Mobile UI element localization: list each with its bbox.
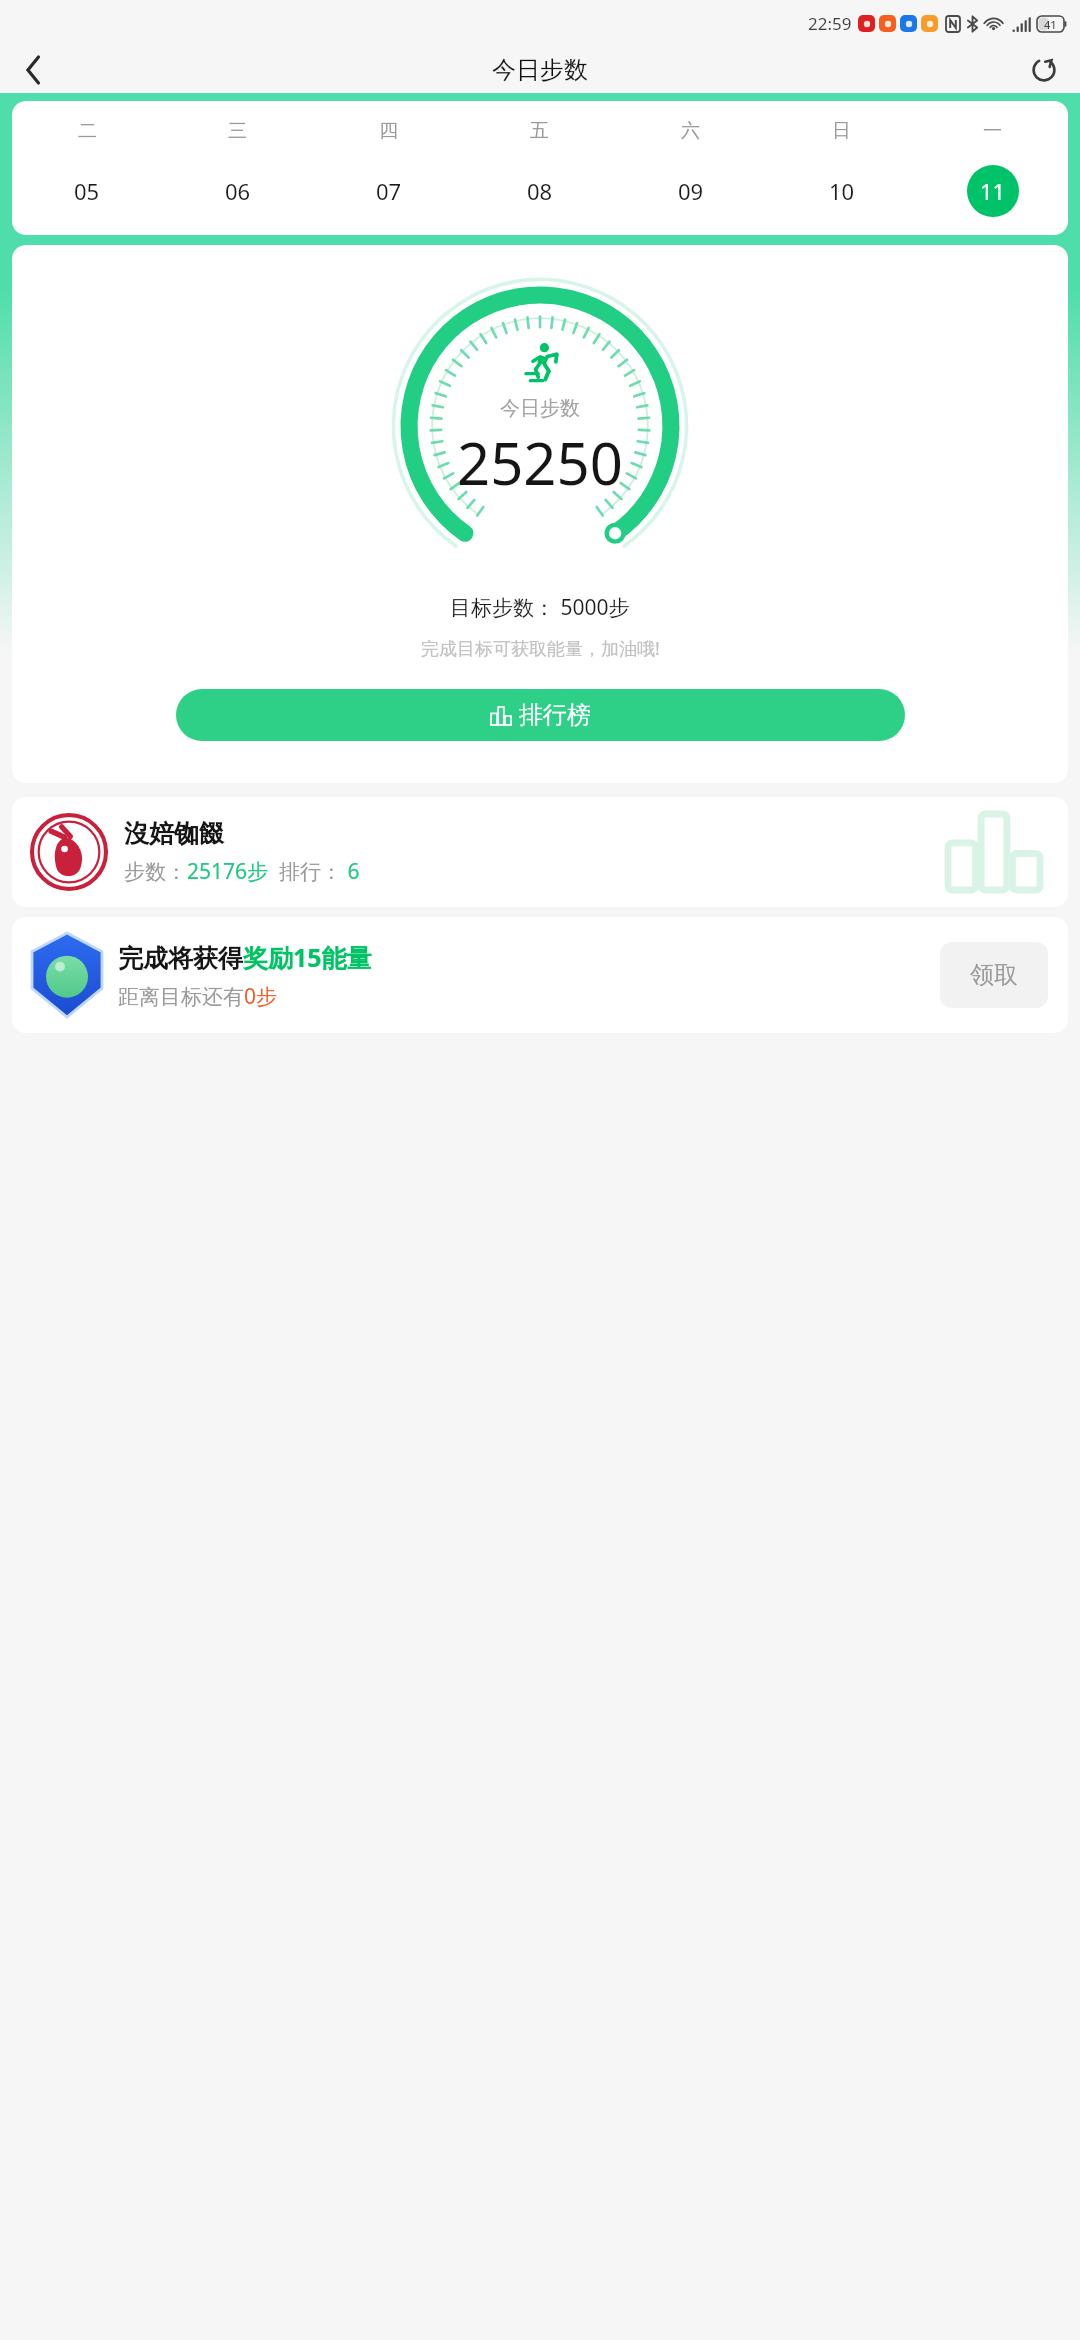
- staticText: 步数：25176步 排行： 6: [124, 857, 360, 886]
- button[interactable]: 领取: [940, 942, 1048, 1008]
- staticText: 距离目标还有0步: [118, 982, 278, 1011]
- button[interactable]: 06: [212, 165, 264, 217]
- staticText: 日: [832, 119, 851, 143]
- button[interactable]: Refresh: [1024, 50, 1064, 90]
- staticText: 08: [527, 176, 553, 206]
- button[interactable]: 08: [514, 165, 566, 217]
- staticText: 三: [228, 119, 247, 143]
- button[interactable]: 11: [967, 165, 1019, 217]
- staticText: 今日步数: [500, 396, 580, 421]
- staticText: 05: [74, 176, 100, 206]
- button[interactable]: 10: [816, 165, 868, 217]
- staticText: 完成目标可获取能量，加油哦!: [421, 636, 660, 661]
- button[interactable]: 09: [665, 165, 717, 217]
- staticText: 六: [681, 119, 700, 143]
- button[interactable]: Back: [14, 50, 54, 90]
- button[interactable]: 排行榜: [176, 689, 905, 741]
- button[interactable]: 沒婄铷餟: [12, 797, 1068, 907]
- staticText: 五: [530, 119, 549, 143]
- staticText: 25250: [457, 423, 623, 502]
- button[interactable]: 07: [363, 165, 415, 217]
- staticText: 06: [225, 176, 251, 206]
- staticText: 沒婄铷餟: [124, 818, 224, 849]
- button[interactable]: 05: [61, 165, 113, 217]
- staticText: 领取: [970, 960, 1018, 990]
- staticText: 完成将获得奖励15能量: [118, 940, 372, 974]
- staticText: 四: [379, 119, 398, 143]
- staticText: 09: [678, 176, 704, 206]
- staticText: 11: [980, 176, 1006, 206]
- staticText: 22:59: [808, 12, 852, 35]
- staticText: 目标步数： 5000步: [450, 593, 630, 622]
- staticText: 一: [983, 119, 1002, 143]
- staticText: 10: [829, 176, 855, 206]
- staticText: 07: [376, 176, 402, 206]
- staticText: 今日步数: [492, 55, 588, 85]
- staticText: 二: [78, 119, 97, 143]
- staticText: 排行榜: [519, 700, 591, 730]
- staticText: 41: [1044, 17, 1057, 32]
